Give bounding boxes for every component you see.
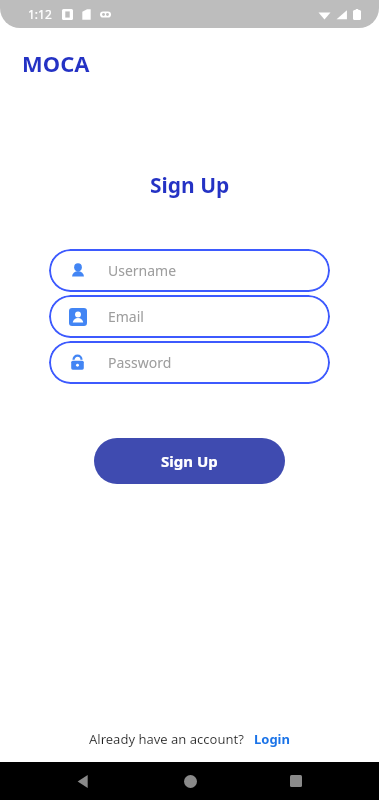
staticText: Sign Up	[150, 171, 230, 200]
staticText: Sign Up	[161, 451, 218, 471]
button[interactable]: Login	[254, 730, 290, 748]
button[interactable]: Sign Up	[94, 438, 285, 484]
button[interactable]: Recent apps	[273, 762, 319, 800]
staticText: Username	[108, 261, 177, 280]
staticText: Email	[108, 307, 144, 326]
staticText: MOCA	[22, 48, 90, 78]
staticText: Login	[254, 730, 290, 748]
staticText: 1:12	[28, 6, 52, 22]
button[interactable]: Username	[49, 249, 330, 292]
staticText: Password	[108, 353, 172, 372]
button[interactable]: Password	[49, 341, 330, 384]
button[interactable]: Email	[49, 295, 330, 338]
button[interactable]: Back	[60, 762, 106, 800]
button[interactable]: Home	[167, 762, 213, 800]
staticText: Already have an account?	[89, 730, 244, 748]
